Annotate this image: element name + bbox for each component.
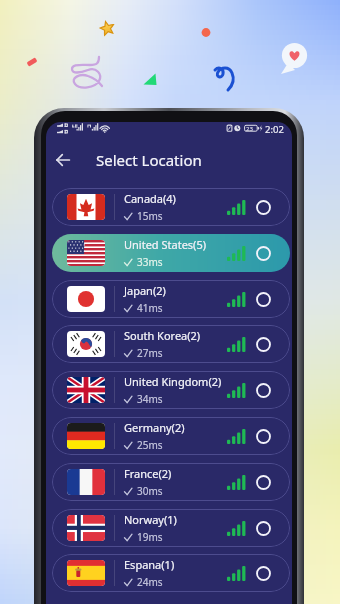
staticText: France(2) xyxy=(124,466,172,481)
staticText: South Korea(2) xyxy=(124,328,201,343)
button[interactable]: France(2) xyxy=(52,463,290,501)
staticText: 2:02 xyxy=(265,123,284,136)
button[interactable]: United Kingdom(2) xyxy=(52,371,290,409)
button[interactable]: United States(5) xyxy=(52,234,290,272)
button[interactable]: Norway(1) xyxy=(52,509,290,547)
staticText: 34ms xyxy=(137,392,163,406)
staticText: United Kingdom(2) xyxy=(124,374,222,389)
button[interactable]: Canada(4) xyxy=(52,188,290,226)
staticText: 23 xyxy=(246,125,253,133)
staticText: 33ms xyxy=(137,255,163,269)
staticText: 25ms xyxy=(137,438,163,452)
button[interactable]: Germany(2) xyxy=(52,417,290,455)
staticText: 30ms xyxy=(137,484,163,498)
staticText: Japan(2) xyxy=(124,283,166,298)
button[interactable]: Espana(1) xyxy=(52,554,290,592)
staticText: 19ms xyxy=(137,530,163,544)
staticText: 27ms xyxy=(137,346,163,360)
button[interactable]: South Korea(2) xyxy=(52,325,290,363)
staticText: Germany(2) xyxy=(124,420,185,435)
staticText: United States(5) xyxy=(124,237,206,252)
staticText: Select Location xyxy=(96,150,202,170)
staticText: 41ms xyxy=(137,301,163,315)
button[interactable]: Japan(2) xyxy=(52,280,290,318)
staticText: Espana(1) xyxy=(124,557,175,572)
button[interactable]: Back xyxy=(46,145,76,175)
staticText: Norway(1) xyxy=(124,512,177,527)
staticText: Canada(4) xyxy=(124,191,176,206)
staticText: 15ms xyxy=(137,209,163,223)
staticText: 24ms xyxy=(137,575,163,589)
